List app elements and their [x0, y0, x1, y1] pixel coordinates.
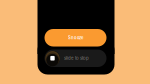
- staticText: Snooze: [68, 35, 83, 40]
- button[interactable]: slide to stop: [44, 49, 106, 67]
- staticText: slide to stop: [64, 56, 89, 61]
- button[interactable]: Snooze: [44, 29, 106, 46]
